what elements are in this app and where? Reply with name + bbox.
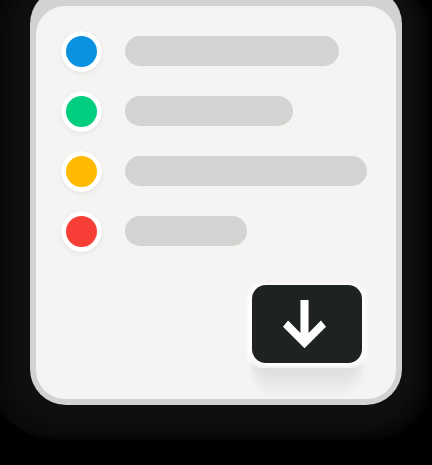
button[interactable]: Item four	[56, 207, 376, 255]
button[interactable]: Item one	[56, 27, 376, 75]
button[interactable]: Item two	[56, 87, 376, 135]
button[interactable]: Item three	[56, 147, 376, 195]
button[interactable]: Download	[252, 285, 362, 363]
